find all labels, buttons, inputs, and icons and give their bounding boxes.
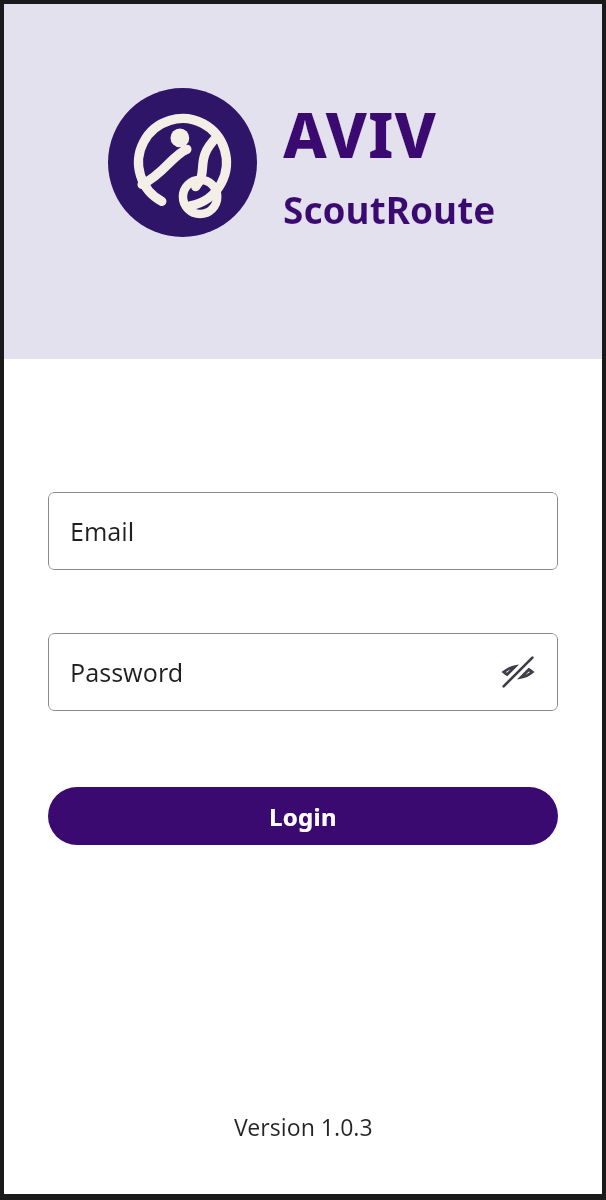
button[interactable]: Show password [494, 648, 542, 696]
button[interactable]: Login [48, 787, 558, 845]
staticText: Email [70, 514, 135, 548]
staticText: Password [70, 655, 184, 689]
staticText: Login [269, 800, 337, 833]
button[interactable]: Password [48, 633, 558, 711]
button[interactable]: Email [48, 492, 558, 570]
staticText: Version 1.0.3 [234, 1111, 373, 1142]
staticText: ScoutRoute [283, 184, 496, 234]
staticText: AVIV [283, 92, 438, 176]
